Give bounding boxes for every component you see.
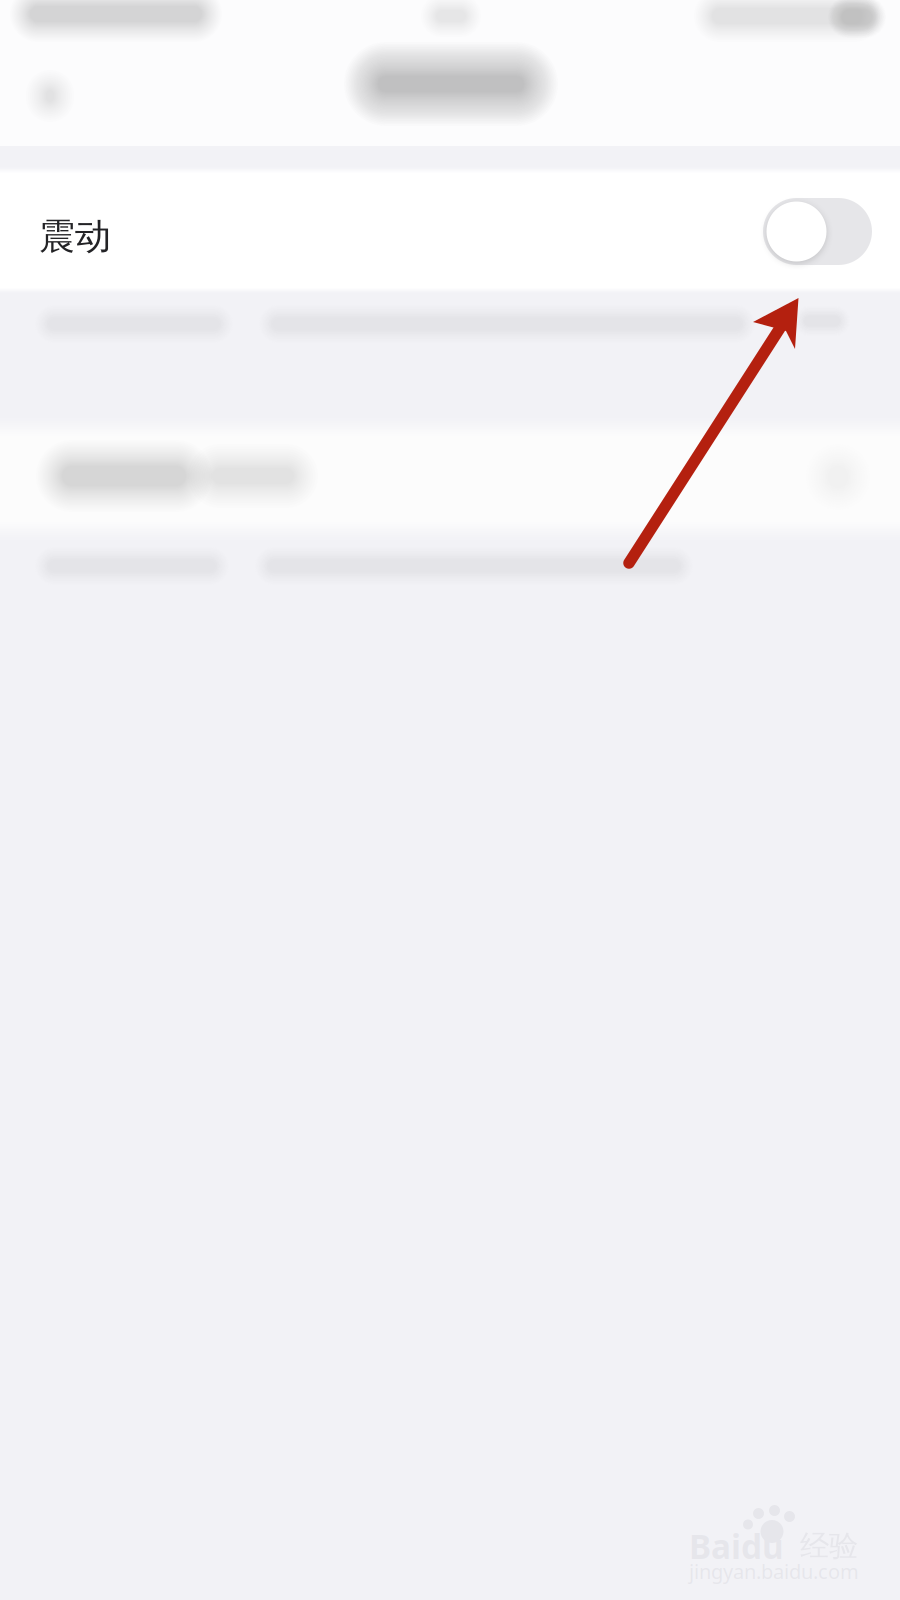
staticText: jingyan.baidu.com — [689, 1558, 859, 1585]
button[interactable]: 震动 — [0, 0, 900, 117]
staticText: Baidu — [689, 1524, 784, 1568]
staticText: 经验 — [800, 1528, 858, 1564]
staticText: 震动 — [39, 214, 111, 259]
